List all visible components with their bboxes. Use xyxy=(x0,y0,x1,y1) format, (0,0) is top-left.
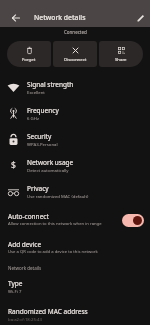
staticText: Use a QR code to add a device to this ne… xyxy=(8,249,98,255)
button[interactable]: Share xyxy=(99,41,143,67)
button[interactable]: Randomized MAC address xyxy=(0,303,150,325)
staticText: Randomized MAC address xyxy=(8,307,88,316)
staticText: Use randomized MAC (default) xyxy=(27,193,89,199)
button[interactable]: Security xyxy=(0,126,150,152)
button[interactable]: $ xyxy=(0,152,150,178)
staticText: Add device xyxy=(8,240,42,249)
staticText: Allow connection to this network when in… xyxy=(8,221,102,227)
button[interactable] xyxy=(122,214,144,227)
staticText: Security xyxy=(27,132,52,141)
staticText: Disconnect xyxy=(64,56,87,62)
button[interactable]: Privacy xyxy=(0,178,150,204)
button[interactable]: Forget xyxy=(7,41,51,67)
button[interactable]: Type xyxy=(0,273,150,299)
staticText: ba:a2:cf:18:25:43 xyxy=(8,316,42,322)
staticText: Frequency xyxy=(27,106,59,115)
staticText: Network details xyxy=(8,265,42,271)
staticText: Type xyxy=(8,279,23,288)
staticText: Privacy xyxy=(27,184,49,193)
button[interactable]: Disconnect xyxy=(53,41,97,67)
button[interactable] xyxy=(12,14,20,22)
button[interactable]: Frequency xyxy=(0,100,150,126)
staticText: Share xyxy=(115,56,127,62)
button[interactable]: Add device xyxy=(0,234,150,260)
staticText: Wi-Fi 7 xyxy=(8,288,22,294)
staticText: Signal strength xyxy=(27,80,74,89)
staticText: Detect automatically xyxy=(27,167,69,173)
staticText: Network usage xyxy=(27,158,74,167)
staticText: Auto-connect xyxy=(8,212,49,221)
staticText: Forget xyxy=(22,56,36,62)
button[interactable] xyxy=(137,14,145,22)
staticText: $ xyxy=(11,159,16,171)
staticText: Network details xyxy=(34,13,86,22)
staticText: Connected xyxy=(64,29,87,35)
staticText: Excellent xyxy=(27,89,45,95)
button[interactable]: Auto-connect xyxy=(0,204,150,234)
staticText: WPA3-Personal xyxy=(27,141,58,147)
staticText: 6 GHz xyxy=(27,115,39,121)
button[interactable]: Signal strength xyxy=(0,74,150,100)
